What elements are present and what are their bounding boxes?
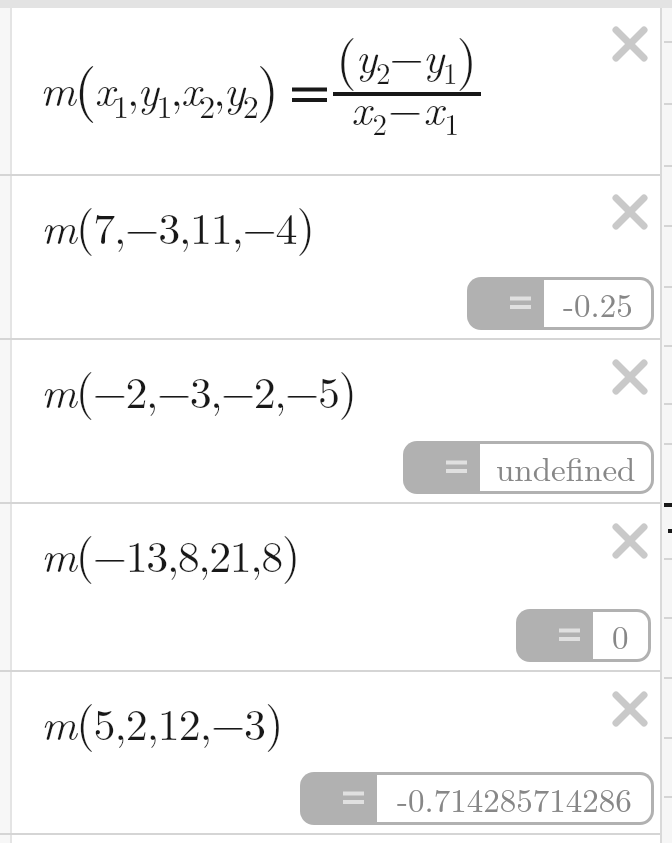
button[interactable] — [12, 176, 660, 338]
staticText: m(5,2,12,−3) — [41, 686, 283, 754]
staticText: m(7,−3,11,−4) — [41, 190, 314, 258]
button[interactable] — [12, 340, 660, 502]
staticText: (y2−y1) — [336, 18, 477, 93]
staticText: m(−13,8,21,8) — [41, 518, 300, 586]
button[interactable] — [608, 687, 652, 731]
button[interactable]: -0.25 — [467, 277, 654, 330]
staticText: undefined — [496, 444, 636, 491]
button[interactable] — [608, 355, 652, 399]
staticText: 0 — [612, 612, 629, 659]
button[interactable] — [608, 22, 652, 66]
button[interactable] — [12, 8, 660, 174]
button[interactable]: -0.714285714286 — [300, 772, 654, 825]
button[interactable] — [12, 504, 660, 670]
button[interactable] — [608, 190, 652, 234]
button[interactable]: undefined — [403, 441, 654, 494]
button[interactable] — [608, 519, 652, 563]
staticText: m(−2,−3,−2,−5) — [41, 354, 356, 422]
staticText: x2−x1 — [351, 75, 461, 144]
button[interactable]: 0 — [516, 609, 651, 662]
staticText: m(x1,y1,x2,y2) — [40, 44, 278, 128]
button[interactable] — [12, 672, 660, 833]
staticText: -0.25 — [563, 280, 633, 327]
staticText: -0.714285714286 — [397, 775, 632, 822]
